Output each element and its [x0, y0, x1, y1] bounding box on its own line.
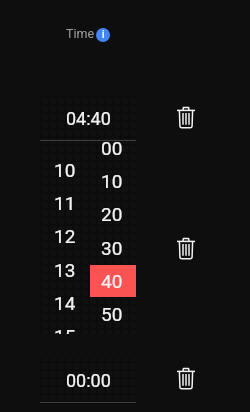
- staticText: 11: [54, 192, 76, 214]
- staticText: 30: [101, 237, 123, 259]
- button[interactable]: Info: [96, 28, 110, 42]
- button[interactable]: 00: [88, 141, 136, 334]
- staticText: 20: [101, 203, 123, 225]
- staticText: 00:00: [66, 370, 111, 391]
- staticText: 10: [54, 159, 76, 181]
- button[interactable]: Delete: [175, 367, 197, 389]
- staticText: 50: [101, 303, 123, 325]
- button[interactable]: 00:00: [40, 358, 136, 403]
- button[interactable]: Delete: [175, 237, 197, 259]
- staticText: 10: [101, 170, 123, 192]
- staticText: 12: [54, 225, 76, 247]
- button[interactable]: 10: [40, 141, 88, 334]
- staticText: 40: [101, 270, 123, 292]
- staticText: 04:40: [66, 108, 111, 129]
- staticText: 00: [101, 141, 123, 159]
- staticText: 14: [54, 292, 76, 314]
- staticText: i: [102, 29, 105, 41]
- staticText: 13: [54, 259, 76, 281]
- staticText: Time: [66, 26, 95, 41]
- button[interactable]: 04:40: [40, 96, 136, 141]
- button[interactable]: Delete: [175, 106, 197, 128]
- staticText: 15: [54, 325, 76, 334]
